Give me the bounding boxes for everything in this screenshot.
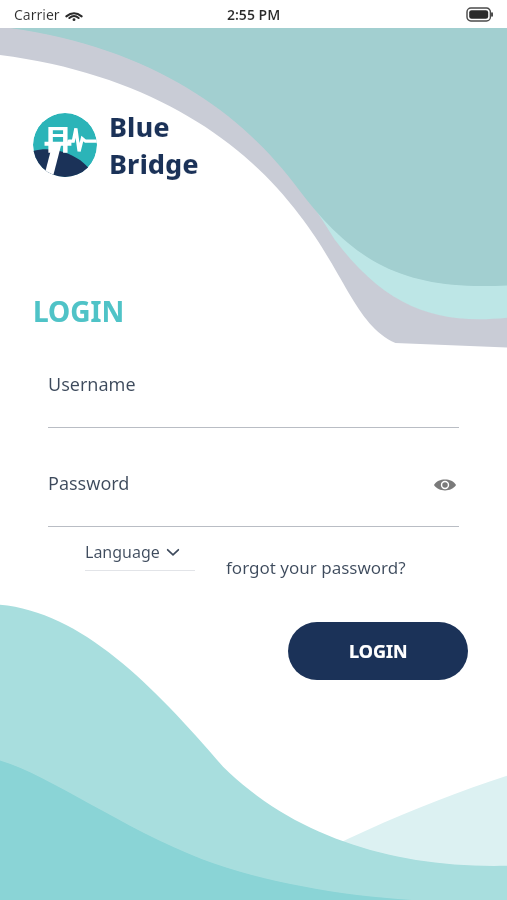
button[interactable]: Show password (427, 467, 463, 503)
button[interactable]: LOGIN (288, 622, 468, 680)
staticText: Carrier (14, 5, 60, 24)
button[interactable]: Language (85, 541, 195, 571)
staticText: Language (85, 541, 160, 563)
staticText: Password (48, 471, 130, 496)
button[interactable]: Username (48, 372, 459, 428)
staticText: LOGIN (33, 292, 125, 330)
staticText: forgot your password? (226, 556, 406, 579)
staticText: Username (48, 372, 136, 397)
staticText: 2:55 PM (227, 5, 281, 24)
button[interactable]: forgot your password? (222, 552, 410, 583)
button[interactable]: Password (48, 471, 459, 527)
staticText: Bridge (109, 145, 199, 182)
staticText: LOGIN (349, 639, 408, 664)
staticText: Blue (109, 108, 170, 145)
